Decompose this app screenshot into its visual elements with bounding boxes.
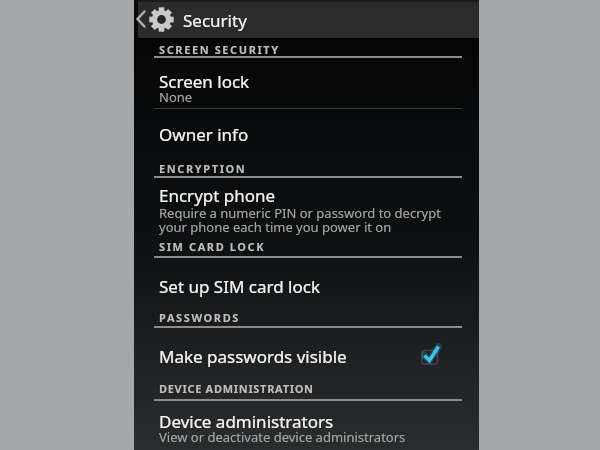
staticText: PASSWORDS	[159, 310, 240, 325]
staticText: Require a numeric PIN or password to dec…	[159, 204, 441, 222]
staticText: ENCRYPTION	[159, 161, 247, 176]
staticText: SCREEN SECURITY	[159, 42, 280, 57]
staticText: Encrypt phone	[159, 184, 276, 207]
staticText: SIM CARD LOCK	[159, 239, 266, 254]
staticText: DEVICE ADMINISTRATION	[159, 381, 314, 396]
staticText: View or deactivate device administrators	[159, 428, 406, 446]
staticText: None	[159, 88, 193, 106]
staticText: Device administrators	[159, 410, 334, 433]
staticText: your phone each time you power it on	[159, 218, 392, 236]
staticText: Make passwords visible	[159, 345, 347, 368]
staticText: Owner info	[159, 123, 249, 146]
staticText: Screen lock	[159, 70, 250, 93]
staticText: Set up SIM card lock	[159, 275, 320, 298]
staticText: Security	[183, 9, 247, 32]
